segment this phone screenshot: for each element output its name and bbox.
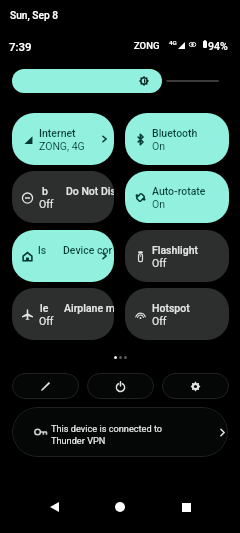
button[interactable]: Power	[87, 373, 154, 399]
staticText: Auto-rotate	[152, 185, 206, 197]
button[interactable]: Auto-rotate	[125, 171, 229, 223]
staticText: Flashlight	[152, 244, 198, 256]
staticText: On	[152, 198, 166, 210]
button[interactable]: b	[12, 171, 114, 223]
staticText: Off	[39, 198, 54, 210]
staticText: Device controls	[63, 244, 112, 256]
staticText: le	[40, 302, 49, 314]
staticText: Airplane mode	[64, 302, 114, 314]
staticText: b	[42, 185, 48, 197]
button[interactable]: Back	[42, 495, 66, 519]
staticText: ZONG	[134, 40, 160, 51]
staticText: This device is connected to	[51, 423, 163, 434]
button[interactable]: le	[12, 288, 114, 340]
staticText: Do Not Disturb	[66, 185, 114, 197]
button[interactable]: Flashlight	[125, 230, 229, 282]
staticText: Off	[39, 315, 54, 327]
button[interactable]: Edit	[12, 373, 79, 399]
staticText: ZONG, 4G	[39, 140, 85, 152]
button[interactable]: Hotspot	[125, 288, 229, 340]
button[interactable]: Internet	[12, 113, 114, 165]
staticText: 94%	[208, 40, 228, 52]
button[interactable]: This device is connected to	[12, 407, 228, 457]
staticText: On	[152, 140, 166, 152]
button[interactable]: Brightness	[12, 69, 162, 93]
staticText: Off	[152, 257, 167, 269]
button[interactable]: ls	[12, 230, 114, 282]
staticText: Off	[152, 315, 167, 327]
staticText: Hotspot	[152, 302, 190, 314]
staticText: 4G	[169, 39, 177, 46]
staticText: 7:39	[9, 40, 32, 53]
button[interactable]: Settings	[162, 373, 229, 399]
button[interactable]: Recents	[174, 495, 198, 519]
staticText: Internet	[39, 127, 76, 139]
button[interactable]: Bluetooth	[125, 113, 229, 165]
staticText: ls	[38, 244, 47, 256]
staticText: Thunder VPN	[51, 435, 106, 446]
button[interactable]: Home	[108, 495, 132, 519]
staticText: Bluetooth	[152, 127, 198, 139]
staticText: Sun, Sep 8	[10, 10, 58, 22]
